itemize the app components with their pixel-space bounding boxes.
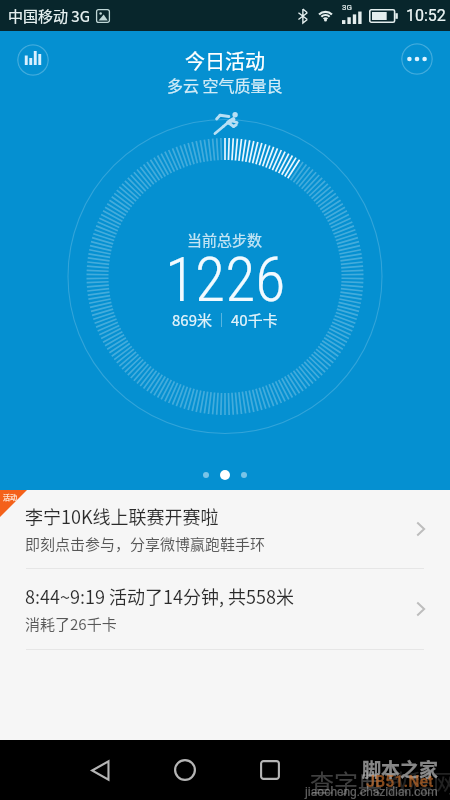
staticText: 40千卡 bbox=[231, 309, 278, 331]
button[interactable]: Home bbox=[163, 748, 207, 792]
staticText: 1226 bbox=[165, 243, 286, 316]
staticText: 当前总步数 bbox=[187, 229, 263, 251]
button[interactable]: Statistics bbox=[17, 44, 49, 76]
staticText: 多云 空气质量良 bbox=[167, 73, 283, 96]
staticText: JB51.Net bbox=[366, 772, 434, 791]
staticText: 869米 bbox=[172, 309, 212, 331]
button[interactable]: Recent apps bbox=[248, 748, 292, 792]
staticText: jiaocheng.chazidian.com bbox=[305, 785, 438, 799]
staticText: 教程网 bbox=[385, 764, 450, 799]
staticText: 中国移动 3G bbox=[8, 5, 91, 27]
button[interactable]: 李宁10K线上联赛开赛啦 bbox=[0, 490, 450, 568]
staticText: 今日活动 bbox=[185, 46, 265, 75]
staticText: 即刻点击参与，分享微博赢跑鞋手环 bbox=[25, 533, 266, 555]
staticText: 查字典 bbox=[310, 764, 382, 799]
staticText: 消耗了26千卡 bbox=[25, 613, 117, 635]
staticText: 活动 bbox=[1, 492, 19, 502]
staticText: 脚本之家 bbox=[362, 755, 439, 783]
staticText: 10:52 bbox=[406, 6, 446, 25]
staticText: 8:44~9:19 活动了14分钟, 共558米 bbox=[25, 583, 294, 609]
button[interactable]: More options bbox=[401, 43, 433, 75]
button[interactable]: Back bbox=[78, 748, 122, 792]
button[interactable]: 8:44~9:19 活动了14分钟, 共558米 bbox=[0, 569, 450, 649]
staticText: 李宁10K线上联赛开赛啦 bbox=[25, 503, 219, 529]
staticText: 3G bbox=[342, 3, 352, 12]
